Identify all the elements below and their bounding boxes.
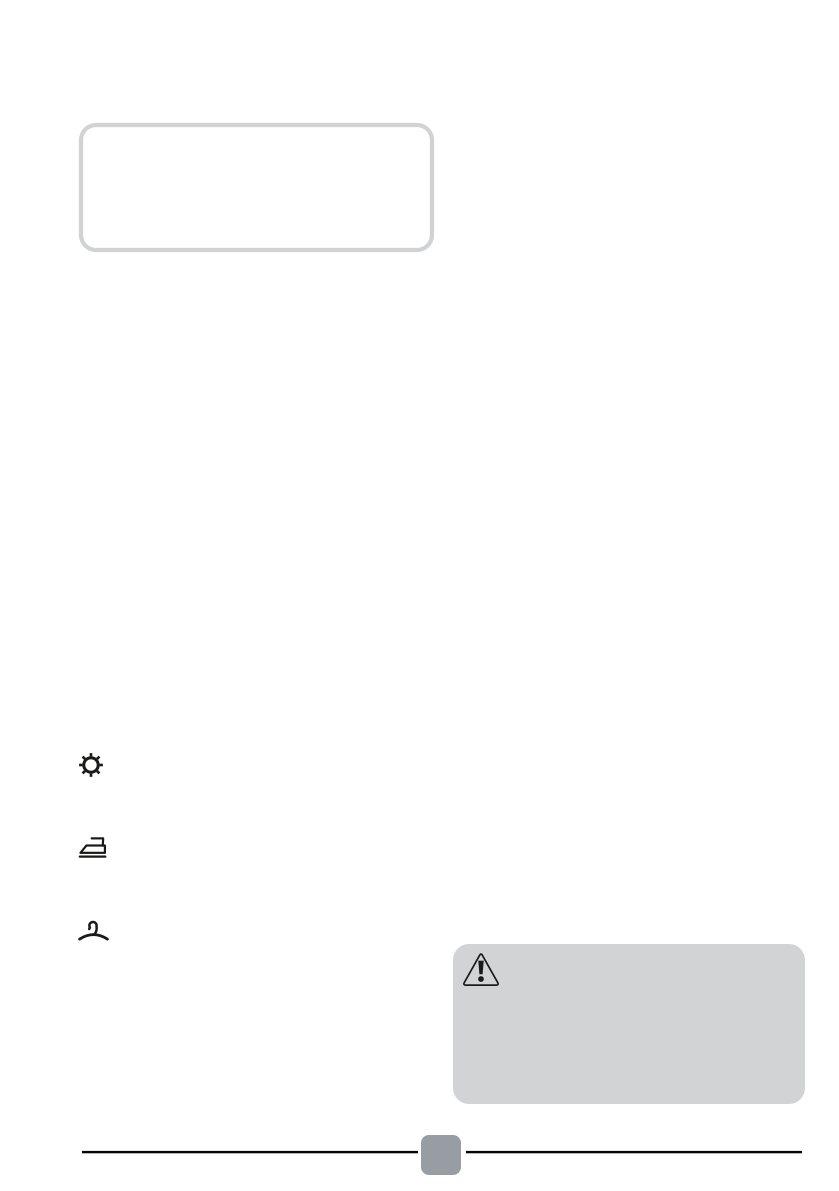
button[interactable]: Programme details — [81, 125, 432, 250]
button[interactable]: Page number — [421, 1135, 461, 1175]
button[interactable]: Iron — [79, 835, 106, 859]
button[interactable]: Hang to dry — [79, 919, 108, 941]
button[interactable]: Dry in the shade — [79, 753, 103, 777]
button[interactable]: Warning — [453, 944, 805, 1104]
